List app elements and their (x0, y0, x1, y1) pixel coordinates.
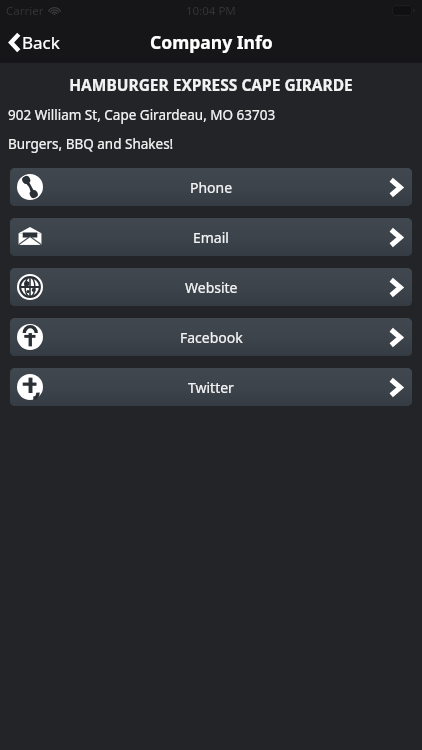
staticText: Twitter (188, 378, 234, 397)
staticText: Burgers, BBQ and Shakes! (8, 135, 174, 153)
staticText: Facebook (180, 328, 243, 347)
staticText: Company Info (150, 30, 273, 54)
staticText: Carrier (6, 3, 44, 19)
button[interactable]: Email (10, 218, 412, 256)
button[interactable]: Phone (10, 168, 412, 206)
staticText: Website (185, 278, 238, 297)
staticText: Email (193, 228, 229, 247)
button[interactable]: Twitter (10, 368, 412, 406)
staticText: 902 William St, Cape Girardeau, MO 63703 (8, 106, 276, 124)
staticText: HAMBURGER EXPRESS CAPE GIRARDE (8, 74, 414, 95)
button[interactable]: Facebook (10, 318, 412, 356)
staticText: 10:04 PM (186, 3, 236, 19)
button[interactable]: Back (0, 25, 70, 60)
button[interactable]: Website (10, 268, 412, 306)
staticText: Back (22, 31, 60, 54)
staticText: Phone (190, 178, 233, 197)
